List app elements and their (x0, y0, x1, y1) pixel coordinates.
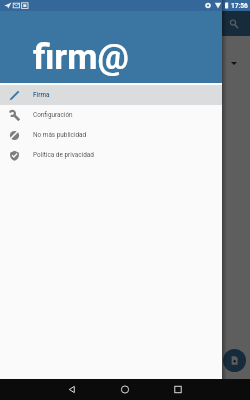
button[interactable]: Firma (0, 85, 222, 105)
button[interactable]: Política de privacidad (0, 145, 222, 165)
staticText: Configuración (33, 111, 73, 119)
staticText: Firma (33, 91, 50, 99)
button[interactable]: Configuración (0, 105, 222, 125)
button[interactable]: No más publicidad (0, 125, 222, 145)
staticText: firm@ (33, 37, 129, 78)
staticText: Política de privacidad (33, 151, 94, 159)
button[interactable]: New document (223, 349, 246, 372)
staticText: 17:56 (231, 2, 248, 10)
staticText: No más publicidad (33, 131, 87, 139)
button[interactable]: Search (224, 14, 244, 34)
